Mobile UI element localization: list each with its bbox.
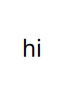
staticText: hi — [22, 33, 42, 63]
